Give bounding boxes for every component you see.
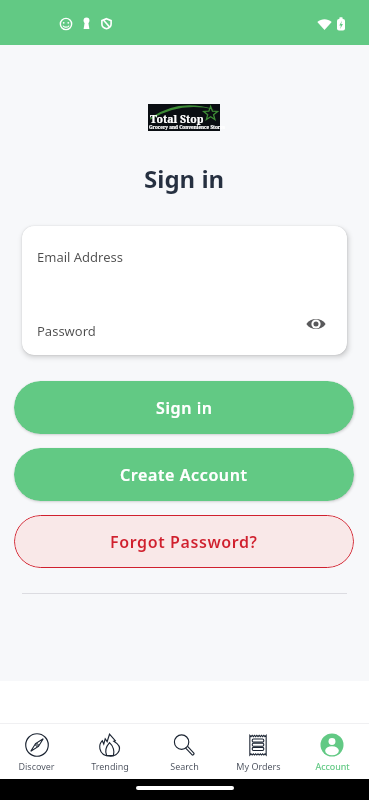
staticText: Sign in <box>144 162 225 195</box>
staticText: Trending <box>91 760 129 772</box>
button[interactable]: Search <box>147 724 221 779</box>
button[interactable]: Create Account <box>14 448 354 501</box>
staticText: Create Account <box>120 464 248 486</box>
button[interactable]: Discover <box>0 724 73 779</box>
button[interactable]: Account <box>295 724 369 779</box>
staticText: Forgot Password? <box>110 531 258 553</box>
staticText: Sign in <box>156 397 213 419</box>
button[interactable]: Forgot Password? <box>14 515 354 568</box>
button[interactable]: Sign in <box>14 381 354 434</box>
staticText: Email Address <box>37 248 123 266</box>
button[interactable]: Trending <box>73 724 147 779</box>
staticText: Search <box>170 760 199 772</box>
staticText: Total Stop <box>150 112 204 126</box>
staticText: Account <box>315 760 350 772</box>
staticText: My Orders <box>236 760 281 772</box>
staticText: Password <box>37 322 96 340</box>
button[interactable]: Password <box>22 307 347 355</box>
staticText: Discover <box>18 760 55 772</box>
staticText: Grocery and Convenience Stores <box>149 124 225 130</box>
button[interactable]: My Orders <box>221 724 295 779</box>
button[interactable]: Show password <box>301 309 331 339</box>
button[interactable]: Email Address <box>22 226 347 288</box>
